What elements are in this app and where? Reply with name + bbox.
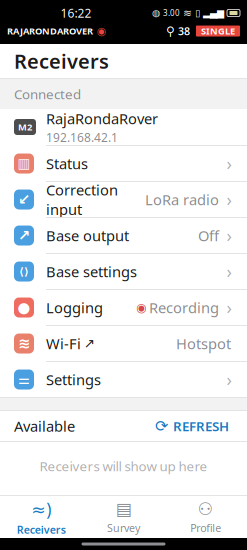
staticText: ↙	[18, 191, 30, 208]
staticText: Hotspot	[176, 334, 231, 353]
button[interactable]: ↙	[0, 182, 247, 217]
staticText: 38	[178, 24, 190, 38]
button[interactable]: ⟳	[151, 413, 233, 439]
button[interactable]: ⟨⟩	[0, 254, 247, 289]
staticText: 16:22	[60, 5, 91, 21]
staticText: ▤	[115, 499, 131, 519]
staticText: ≈)	[31, 497, 51, 520]
staticText: ›	[226, 368, 231, 391]
button[interactable]: ↗	[0, 218, 247, 253]
staticText: ›	[226, 296, 231, 319]
staticText: ▂▄▆	[203, 8, 224, 18]
staticText: ●	[17, 299, 30, 316]
staticText: Wi-Fi	[46, 334, 81, 353]
staticText: ⚲	[166, 24, 175, 38]
staticText: ◉	[97, 25, 106, 37]
staticText: M2	[18, 121, 32, 133]
staticText: ◉	[136, 301, 146, 314]
staticText: Available	[14, 416, 75, 436]
staticText: ▥	[17, 156, 30, 171]
staticText: ↗	[84, 336, 95, 351]
button[interactable]: ≋	[0, 326, 247, 361]
staticText: Profile	[190, 521, 221, 535]
staticText: ›	[226, 260, 231, 283]
staticText: Logging	[46, 298, 103, 317]
staticText: RAJARONDAROVER	[7, 25, 93, 37]
staticText: ≋	[18, 335, 30, 352]
staticText: ›	[226, 188, 231, 211]
staticText: 3.00	[163, 8, 180, 18]
staticText: ›	[226, 152, 231, 175]
staticText: Recording	[149, 298, 219, 317]
staticText: ›	[226, 224, 231, 247]
button[interactable]: ⚌	[0, 362, 247, 397]
staticText: Base settings	[46, 262, 137, 281]
staticText: Settings	[46, 370, 101, 389]
staticText: ◍	[152, 8, 160, 18]
staticText: ⚇	[198, 499, 214, 519]
staticText: Status	[46, 154, 88, 173]
staticText: ⚌	[18, 372, 30, 387]
staticText: Receivers	[14, 48, 109, 74]
staticText: REFRESH	[173, 417, 229, 435]
staticText: ▯	[195, 8, 200, 18]
button[interactable]: ▤	[82, 496, 165, 538]
button[interactable]: ≈)	[0, 496, 82, 538]
staticText: Receivers	[17, 522, 66, 537]
button[interactable]: ⚇	[165, 496, 247, 538]
staticText: ⟨⟩	[19, 265, 29, 277]
staticText: Correction input	[46, 180, 118, 219]
button[interactable]: ●	[0, 290, 247, 325]
button[interactable]: ▥	[0, 146, 247, 181]
staticText: ⟳	[155, 417, 168, 435]
staticText: Receivers will show up here	[39, 457, 207, 475]
staticText: Connected	[14, 85, 81, 103]
staticText: RajaRondaRover	[46, 109, 158, 128]
staticText: SINGLE	[201, 25, 235, 37]
staticText: 192.168.42.1	[46, 129, 118, 145]
button[interactable]: M2	[0, 109, 247, 145]
staticText: ≋	[183, 7, 192, 19]
staticText: LoRa radio	[145, 190, 219, 209]
staticText: Survey	[107, 521, 140, 535]
staticText: ↗	[18, 227, 30, 244]
staticText: Base output	[46, 226, 129, 245]
staticText: Off	[198, 226, 219, 245]
